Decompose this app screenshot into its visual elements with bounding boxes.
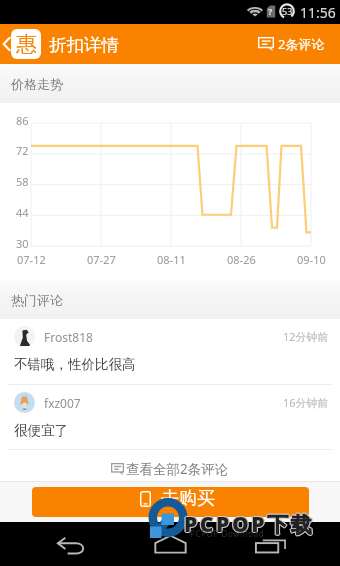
staticText: 86 [16, 113, 29, 128]
staticText: ? [268, 5, 273, 17]
staticText: 价格走势 [11, 76, 63, 92]
staticText: 44 [16, 205, 29, 220]
staticText: 查看全部2条评论 [126, 460, 229, 478]
button[interactable]: Back [0, 29, 41, 59]
staticText: 16分钟前 [283, 395, 329, 410]
button[interactable]: 查看全部2条评论 [0, 450, 340, 481]
staticText: 很便宜了 [14, 422, 68, 439]
staticText: PCPOP Download [190, 528, 265, 539]
staticText: 08-26 [227, 252, 256, 267]
button[interactable]: Back [57, 537, 85, 554]
staticText: 07-27 [87, 252, 116, 267]
staticText: 惠 [16, 31, 37, 57]
button[interactable]: fxz007 [0, 385, 340, 449]
staticText: PCPOP下载 [183, 510, 314, 539]
staticText: 去购买 [161, 487, 215, 510]
staticText: 07-12 [17, 252, 46, 267]
staticText: 58 [16, 174, 29, 189]
staticText: Frost818 [44, 329, 93, 345]
staticText: fxz007 [44, 395, 81, 411]
staticText: PCPOP下载 [185, 510, 316, 539]
staticText: 热门评论 [11, 292, 63, 308]
staticText: 53 [282, 5, 293, 17]
staticText: 08-11 [157, 252, 186, 267]
staticText: 30 [16, 236, 29, 251]
staticText: 12分钟前 [283, 329, 329, 344]
staticText: 不错哦，性价比很高 [14, 356, 136, 373]
button[interactable]: 2条评论 [250, 28, 333, 60]
staticText: 2条评论 [278, 35, 325, 53]
button[interactable]: Frost818 [0, 319, 340, 384]
staticText: 72 [16, 143, 29, 158]
staticText: PCPOP下载 [184, 509, 315, 538]
staticText: PCPOP下载 [184, 511, 315, 540]
staticText: PCPOP下载 [184, 510, 315, 539]
button[interactable]: Recent apps [255, 535, 286, 553]
staticText: 折扣详情 [49, 34, 119, 56]
staticText: 11:56 [300, 3, 336, 22]
button[interactable]: Home [154, 535, 187, 553]
button[interactable]: 去购买 [32, 487, 309, 517]
staticText: 09-10 [297, 252, 326, 267]
